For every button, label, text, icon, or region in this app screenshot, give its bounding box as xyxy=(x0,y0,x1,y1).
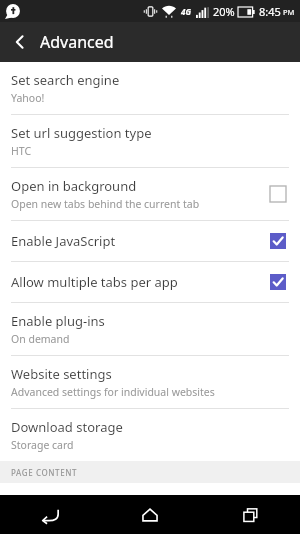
button[interactable]: Unchecked xyxy=(267,183,289,205)
button[interactable]: Checked xyxy=(267,271,289,293)
button[interactable]: Enable JavaScript xyxy=(0,221,300,261)
staticText: Set url suggestion type xyxy=(11,124,152,142)
staticText: On demand xyxy=(11,332,70,346)
button[interactable]: Back xyxy=(0,495,100,534)
button[interactable]: Enable plug-ins xyxy=(0,303,300,355)
staticText: Enable JavaScript xyxy=(11,232,116,250)
staticText: 8:45 xyxy=(259,4,281,19)
staticText: Advanced xyxy=(40,31,114,53)
staticText: 4G xyxy=(181,6,191,17)
staticText: Open new tabs behind the current tab xyxy=(11,197,200,211)
button[interactable]: Checked xyxy=(267,230,289,252)
button[interactable]: Open in background xyxy=(0,168,300,220)
staticText: Open in background xyxy=(11,177,137,195)
staticText: Set search engine xyxy=(11,71,120,89)
staticText: PAGE CONTENT xyxy=(11,467,78,478)
button[interactable]: Download storage xyxy=(0,409,300,461)
staticText: Advanced settings for individual website… xyxy=(11,385,215,399)
staticText: Yahoo! xyxy=(11,91,45,105)
button[interactable]: Home xyxy=(100,495,200,534)
staticText: PM xyxy=(283,7,295,17)
button[interactable]: Set search engine xyxy=(0,62,300,114)
button[interactable]: Back xyxy=(0,22,40,62)
staticText: Download storage xyxy=(11,418,123,436)
staticText: Enable plug-ins xyxy=(11,312,105,330)
button[interactable]: Allow multiple tabs per app xyxy=(0,262,300,302)
staticText: Storage card xyxy=(11,438,74,452)
staticText: HTC xyxy=(11,144,32,158)
button[interactable]: Set url suggestion type xyxy=(0,115,300,167)
staticText: 20% xyxy=(213,4,235,19)
staticText: Allow multiple tabs per app xyxy=(11,273,178,291)
button[interactable]: Website settings xyxy=(0,356,300,408)
staticText: Website settings xyxy=(11,365,112,383)
button[interactable]: Recent apps xyxy=(200,495,300,534)
